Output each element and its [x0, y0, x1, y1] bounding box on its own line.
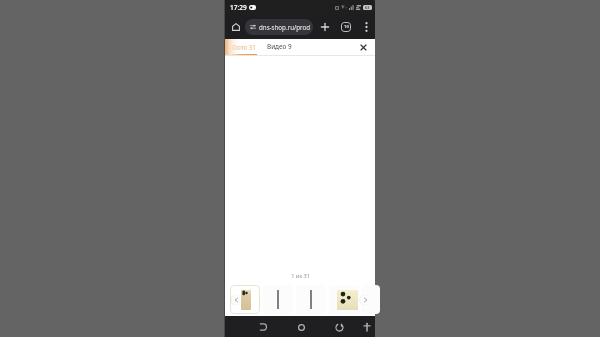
button[interactable]: Rotate screen [331, 319, 347, 335]
button[interactable]: New tab [317, 19, 333, 35]
button[interactable]: Home [293, 319, 309, 335]
button[interactable]: Previous image [231, 295, 241, 305]
staticText: dns-shop.ru/prod [259, 23, 311, 31]
button[interactable]: Видео 9 [267, 41, 293, 52]
button[interactable]: More options [358, 19, 374, 35]
button[interactable]: Accessibility [359, 319, 375, 335]
staticText: 63 [365, 5, 370, 10]
staticText: Видео 9 [267, 42, 292, 51]
button[interactable]: dns-shop.ru/prod [245, 19, 313, 35]
staticText: 1 из 31 [291, 272, 310, 280]
button[interactable]: Home [228, 19, 244, 35]
button[interactable]: Back [255, 319, 271, 335]
button[interactable] [263, 285, 293, 314]
button[interactable]: Close gallery [356, 40, 371, 55]
button[interactable] [362, 285, 380, 314]
button[interactable]: Фото 31 [232, 41, 258, 52]
button[interactable]: Next image [360, 295, 370, 305]
staticText: Фото 31 [232, 43, 256, 51]
button[interactable] [296, 285, 326, 314]
staticText: 17:29 [230, 3, 247, 12]
button[interactable] [230, 285, 260, 314]
button[interactable]: Switch tabs [337, 18, 354, 35]
button[interactable] [329, 285, 359, 314]
staticText: 10 [344, 24, 349, 30]
